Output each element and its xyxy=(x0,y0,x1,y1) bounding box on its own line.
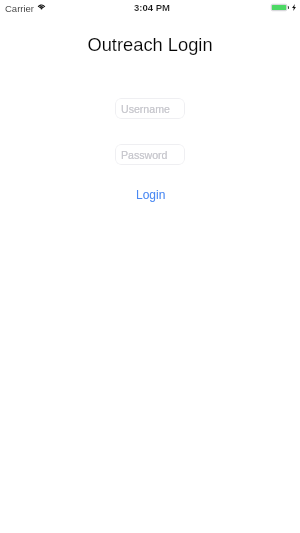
staticText: Username xyxy=(121,103,170,115)
staticText: Carrier xyxy=(5,3,35,14)
other: Battery charging xyxy=(271,4,289,11)
staticText: Login xyxy=(136,188,166,201)
other: Wi-Fi signal xyxy=(37,3,46,9)
button[interactable]: Username xyxy=(115,98,185,119)
staticText: Outreach Login xyxy=(0,34,300,54)
button[interactable]: Password xyxy=(115,144,185,165)
button[interactable]: Login xyxy=(132,186,170,203)
staticText: Password xyxy=(121,149,168,161)
staticText: 3:04 PM xyxy=(134,2,170,13)
